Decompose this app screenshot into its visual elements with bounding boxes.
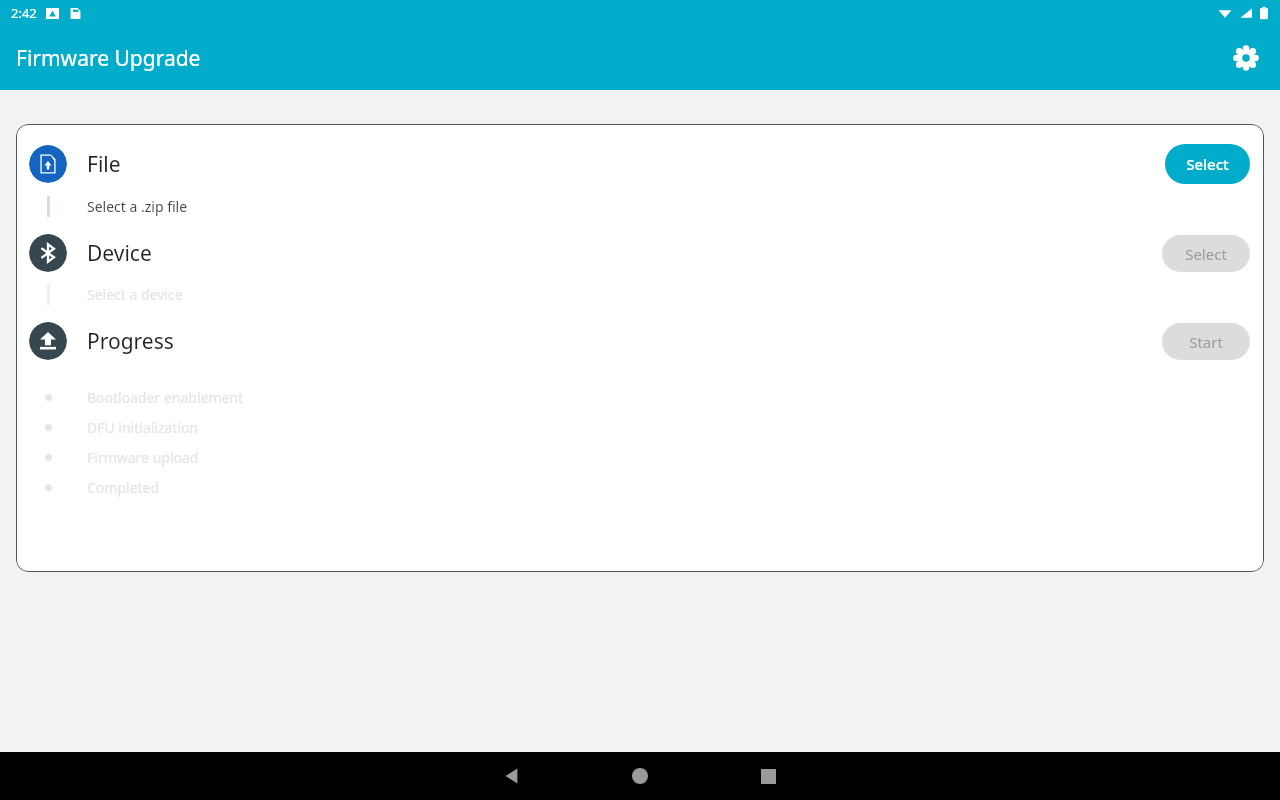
button[interactable]: Select xyxy=(1162,235,1250,272)
staticText: File xyxy=(87,150,121,179)
staticText: Completed xyxy=(87,478,160,497)
button[interactable]: Select xyxy=(1165,144,1250,184)
staticText: DFU initialization xyxy=(87,418,199,437)
staticText: Progress xyxy=(87,327,174,356)
staticText: Firmware upload xyxy=(87,448,199,467)
staticText: Select a .zip file xyxy=(87,197,188,216)
staticText: Device xyxy=(87,239,152,268)
staticText: Bootloader enablement xyxy=(87,388,244,407)
button[interactable]: Device xyxy=(29,234,67,272)
button[interactable]: Home xyxy=(612,752,668,800)
button[interactable]: Recents xyxy=(740,752,796,800)
staticText: Select xyxy=(1185,244,1227,264)
button[interactable]: File xyxy=(29,145,67,183)
button[interactable]: Settings xyxy=(1222,34,1270,82)
staticText: Firmware Upgrade xyxy=(16,44,201,73)
staticText: Select a device xyxy=(87,285,183,304)
staticText: Select xyxy=(1186,154,1229,174)
staticText: Start xyxy=(1189,332,1223,352)
button[interactable]: Start xyxy=(1162,323,1250,360)
button[interactable]: Back xyxy=(484,752,540,800)
staticText: 2:42 xyxy=(11,4,37,22)
button[interactable]: Progress xyxy=(29,322,67,360)
